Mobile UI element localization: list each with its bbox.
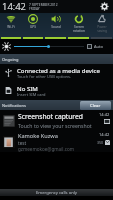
staticText: Power saving [97,25,107,33]
staticText: 7 SEPTEMBER 2012 [29,3,58,7]
button[interactable]: GPS [22,13,44,39]
button[interactable]: Wi-Fi [0,13,22,39]
button[interactable]: Sound [44,13,67,39]
button[interactable]: Connected as a media device [0,64,113,81]
button[interactable]: Auto [87,44,103,49]
button[interactable]: Settings [100,2,109,11]
button[interactable]: No SIM [0,81,113,100]
button[interactable]: Close notification panel [0,189,113,196]
staticText: test [18,140,27,146]
button[interactable]: Brightness [14,42,84,51]
button[interactable]: Screenshot captured [0,110,113,131]
staticText: FRIDAY [29,7,40,11]
staticText: 14:42 [2,0,27,13]
staticText: Sound [51,25,61,29]
staticText: Insert SIM card [17,92,46,97]
staticText: gzmeemokoe@gmail.com [18,146,75,152]
staticText: No SIM [17,84,38,92]
staticText: Connected as a media device [17,66,100,74]
staticText: 14:42 [99,112,110,117]
staticText: Notifications [2,103,26,108]
staticText: Auto [94,44,103,49]
button[interactable]: Power saving [90,13,113,39]
staticText: Touch for other USB options. [17,74,72,79]
staticText: GPS [30,25,36,29]
staticText: Wi-Fi [7,25,15,29]
staticText: Screen rotation [73,25,85,33]
button[interactable]: Clear [80,101,111,110]
staticText: Ongoing [2,57,19,62]
staticText: Emergency calls only [36,190,78,196]
staticText: Screenshot captured [18,112,83,121]
staticText: Clear [90,103,101,109]
staticText: Kamoke Kuzwa [18,132,58,140]
button[interactable]: Screen rotation [67,13,90,39]
staticText: 14:42 [99,132,110,137]
staticText: Touch to view your screenshot [18,122,92,129]
button[interactable]: Kamoke Kuzwa [0,131,113,152]
staticText: 350 [97,140,104,145]
